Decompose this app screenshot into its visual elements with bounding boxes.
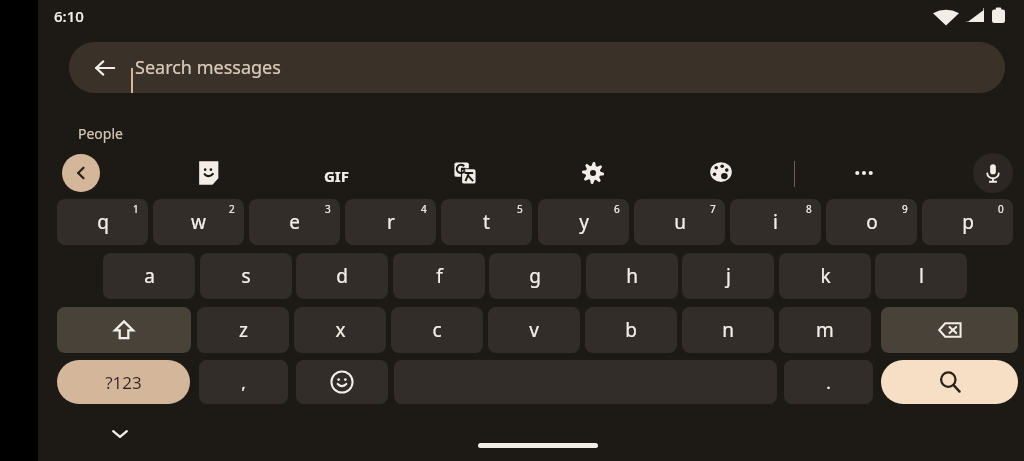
staticText: 8	[806, 202, 812, 216]
button[interactable]: Translate	[443, 151, 487, 195]
staticText: w	[191, 209, 206, 235]
staticText: v	[529, 317, 539, 343]
button[interactable]: g	[489, 253, 581, 299]
staticText: 9	[902, 202, 908, 216]
staticText: u	[674, 209, 686, 235]
button[interactable]: p	[922, 199, 1013, 245]
button[interactable]: k	[779, 253, 871, 299]
button[interactable]: v	[488, 307, 580, 353]
staticText: d	[336, 263, 348, 289]
button[interactable]: Hide keyboard	[98, 412, 142, 456]
staticText: i	[773, 209, 778, 235]
staticText: t	[483, 209, 490, 235]
button[interactable]: j	[682, 253, 774, 299]
button[interactable]: d	[296, 253, 388, 299]
button[interactable]: e	[249, 199, 340, 245]
button[interactable]: r	[345, 199, 436, 245]
button[interactable]: More options	[842, 151, 886, 195]
button[interactable]: GIF	[314, 154, 358, 198]
staticText: People	[78, 124, 123, 143]
staticText: 0	[998, 202, 1004, 216]
staticText: h	[626, 263, 638, 289]
button[interactable]: o	[826, 199, 917, 245]
button[interactable]: a	[103, 253, 195, 299]
button[interactable]: Comma	[199, 360, 288, 404]
staticText: ?123	[105, 371, 142, 394]
button[interactable]: Shift	[57, 307, 191, 353]
button[interactable]: i	[730, 199, 821, 245]
button[interactable]: Backspace	[881, 307, 1018, 353]
staticText: n	[722, 317, 734, 343]
button[interactable]: m	[779, 307, 871, 353]
staticText: s	[241, 263, 251, 289]
button[interactable]: y	[538, 199, 629, 245]
staticText: q	[97, 209, 109, 235]
button[interactable]: b	[585, 307, 677, 353]
staticText: c	[432, 317, 442, 343]
button[interactable]: x	[294, 307, 386, 353]
staticText: 4	[421, 202, 427, 216]
staticText: a	[144, 263, 155, 289]
button[interactable]: Collapse toolbar	[62, 154, 100, 192]
staticText: p	[962, 209, 974, 235]
staticText: .	[826, 371, 831, 394]
staticText: b	[625, 317, 637, 343]
staticText: y	[579, 209, 589, 235]
button[interactable]: f	[393, 253, 485, 299]
staticText: 3	[325, 202, 331, 216]
button[interactable]: Themes	[699, 151, 743, 195]
button[interactable]: Stickers	[187, 151, 231, 195]
button[interactable]: z	[197, 307, 289, 353]
staticText: Search messages	[135, 55, 281, 80]
button[interactable]: Back	[83, 46, 127, 90]
staticText: f	[436, 263, 443, 289]
button[interactable]: l	[875, 253, 967, 299]
staticText: o	[866, 209, 878, 235]
staticText: GIF	[324, 166, 349, 186]
button[interactable]: w	[153, 199, 244, 245]
staticText: z	[239, 317, 248, 343]
staticText: r	[387, 209, 395, 235]
staticText: k	[820, 263, 831, 289]
staticText: 6	[614, 202, 620, 216]
button[interactable]: n	[682, 307, 774, 353]
button[interactable]: u	[634, 199, 725, 245]
staticText: 6:10	[54, 6, 84, 26]
staticText: 5	[517, 202, 523, 216]
button[interactable]: Search	[881, 360, 1018, 404]
button[interactable]: Emoji	[296, 360, 388, 404]
staticText: 1	[133, 202, 139, 216]
staticText: l	[919, 263, 924, 289]
staticText: g	[529, 263, 541, 289]
button[interactable]: c	[391, 307, 483, 353]
staticText: 2	[229, 202, 235, 216]
button[interactable]: Period	[784, 360, 873, 404]
button[interactable]: ?123	[57, 360, 190, 404]
button[interactable]: s	[200, 253, 292, 299]
staticText: e	[289, 209, 300, 235]
button[interactable]: Voice input	[973, 153, 1013, 193]
staticText: m	[816, 317, 834, 343]
button[interactable]: t	[441, 199, 532, 245]
staticText: 7	[710, 202, 716, 216]
button[interactable]: q	[57, 199, 148, 245]
staticText: ,	[241, 371, 246, 394]
button[interactable]: h	[586, 253, 678, 299]
button[interactable]: Settings	[571, 151, 615, 195]
staticText: j	[726, 263, 731, 289]
staticText: x	[335, 317, 346, 343]
button[interactable]: Back	[69, 42, 1005, 93]
